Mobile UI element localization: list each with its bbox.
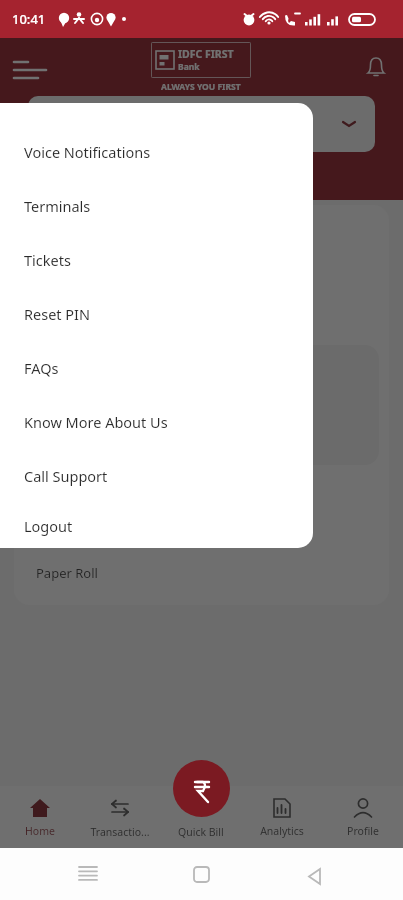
- button[interactable]: Call Support: [0, 449, 313, 503]
- staticText: Logout: [24, 516, 73, 536]
- button[interactable]: Notifications: [349, 40, 403, 94]
- staticText: Profile: [347, 824, 379, 838]
- button[interactable]: CMC: [24, 345, 379, 465]
- staticText: Tickets: [24, 250, 71, 270]
- button[interactable]: Recents: [64, 850, 112, 898]
- button[interactable]: Voice Notifications: [0, 125, 313, 179]
- staticText: Voice Notifications: [24, 142, 151, 162]
- button[interactable]: Know More About Us: [0, 395, 313, 449]
- staticText: ALWAYS YOU FIRST: [161, 81, 241, 93]
- button[interactable]: Transactio...: [80, 786, 160, 848]
- button[interactable]: Home: [177, 850, 225, 898]
- button[interactable]: Menu: [0, 40, 54, 94]
- staticText: FAQs: [24, 358, 59, 378]
- staticText: IDFC FIRST: [178, 47, 234, 61]
- button[interactable]: Logout: [0, 503, 313, 548]
- staticText: Transactio...: [90, 825, 150, 839]
- button[interactable]: Home: [0, 786, 80, 848]
- staticText: Quick Bill: [178, 825, 224, 839]
- button[interactable]: Terminals: [0, 179, 313, 233]
- staticText: Bank: [178, 61, 200, 73]
- staticText: Reset PIN: [24, 304, 91, 324]
- staticText: 10:41: [12, 10, 46, 28]
- button[interactable]: FAQs: [0, 341, 313, 395]
- button[interactable]: Quick Bill: [173, 760, 230, 817]
- button[interactable]: Back: [290, 850, 338, 898]
- button[interactable]: Quick Bill: [160, 786, 241, 848]
- staticText: Analytics: [260, 824, 304, 838]
- staticText: Call Support: [24, 466, 108, 486]
- button[interactable]: Paper Roll: [14, 544, 389, 601]
- staticText: Paper Roll: [36, 564, 98, 582]
- button[interactable]: Tickets: [0, 233, 313, 287]
- button[interactable]: Reset PIN: [0, 287, 313, 341]
- staticText: Know More About Us: [24, 412, 168, 432]
- staticText: Home: [25, 824, 55, 838]
- button[interactable]: Profile: [322, 786, 403, 848]
- button[interactable]: Analytics: [241, 786, 322, 848]
- button[interactable]: [28, 96, 375, 152]
- staticText: Terminals: [24, 196, 91, 216]
